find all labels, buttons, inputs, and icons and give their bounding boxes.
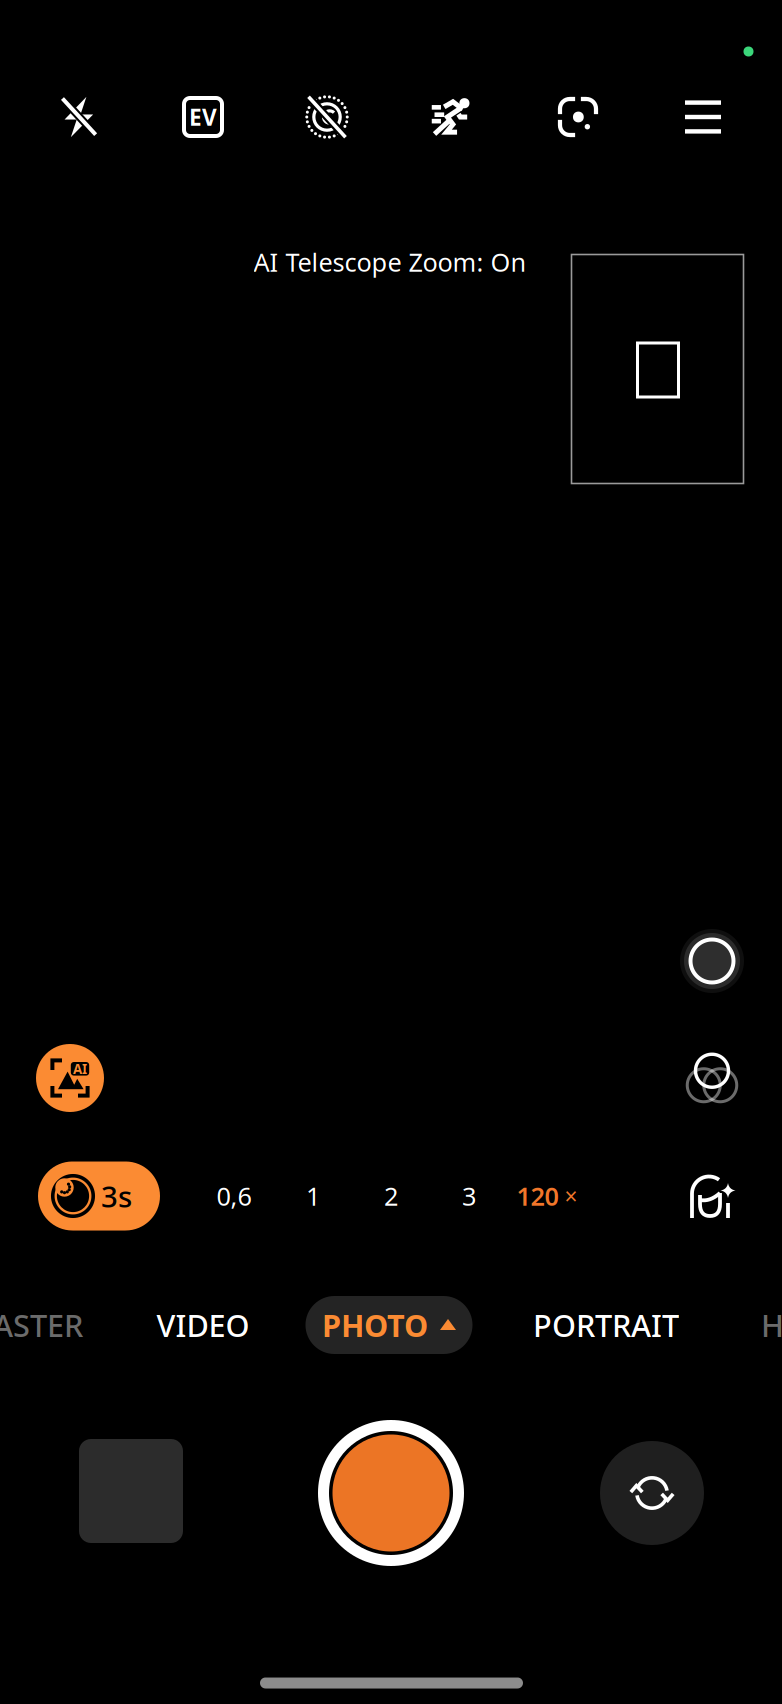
- staticText: 1: [306, 1179, 320, 1213]
- staticText: AI: [73, 1060, 87, 1078]
- staticText: 0,6: [216, 1179, 251, 1213]
- button[interactable]: Timer 3 seconds: [38, 1161, 160, 1230]
- staticText: ASTER: [0, 1305, 83, 1345]
- staticText: 3: [462, 1179, 476, 1213]
- button[interactable]: Shutter: [318, 1420, 464, 1566]
- button[interactable]: Filters: [687, 1053, 737, 1103]
- button[interactable]: AI scene detection: [36, 1044, 104, 1112]
- staticText: 3s: [101, 1176, 132, 1215]
- button[interactable]: More settings: [685, 103, 721, 131]
- staticText: VIDEO: [156, 1305, 249, 1345]
- button[interactable]: Gallery: [79, 1439, 183, 1543]
- button[interactable]: VIDEO: [133, 1296, 273, 1354]
- button[interactable]: Flash off: [57, 96, 99, 138]
- staticText: PHOTO: [322, 1305, 428, 1345]
- button[interactable]: Scan: [555, 94, 601, 140]
- button[interactable]: Live photo off: [305, 95, 349, 139]
- button[interactable]: Exposure compensation: [180, 94, 226, 140]
- button[interactable]: 0,6: [202, 1170, 266, 1222]
- staticText: 120: [516, 1179, 558, 1213]
- button[interactable]: PHOTO: [305, 1296, 472, 1354]
- staticText: EV: [189, 102, 217, 132]
- staticText: AI Telescope Zoom: On: [253, 245, 526, 279]
- staticText: ×: [564, 1181, 577, 1211]
- button[interactable]: 2: [365, 1170, 417, 1222]
- staticText: HI: [761, 1305, 782, 1345]
- staticText: 2: [384, 1179, 398, 1213]
- button[interactable]: Beauty: [687, 1171, 737, 1221]
- button[interactable]: HI: [761, 1296, 782, 1354]
- button[interactable]: Motion capture: [429, 94, 475, 140]
- button[interactable]: 3: [443, 1170, 495, 1222]
- staticText: PORTRAIT: [533, 1305, 679, 1345]
- button[interactable]: PORTRAIT: [511, 1296, 701, 1354]
- button[interactable]: 1: [287, 1170, 339, 1222]
- button[interactable]: Switch camera: [600, 1441, 704, 1545]
- button[interactable]: 120: [501, 1170, 593, 1222]
- button[interactable]: ASTER: [0, 1296, 83, 1354]
